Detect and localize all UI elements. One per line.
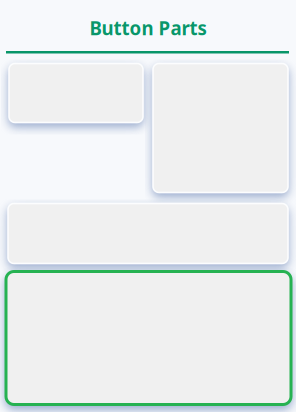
button[interactable]: Outlined part [6, 271, 291, 404]
staticText: Button Parts [89, 16, 206, 40]
